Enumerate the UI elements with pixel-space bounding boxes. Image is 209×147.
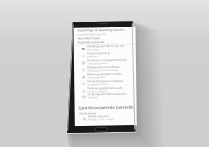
staticText: Hierdie toestel: [79, 111, 97, 114]
staticText: sinkroniseer: [87, 48, 100, 51]
staticText: Ondersteunde Office dokumen: [87, 92, 127, 96]
staticText: Programme wat jy: [87, 51, 111, 55]
staticText: Instellings wat bly oor jou toe: [87, 44, 125, 48]
staticText: Voorkeure vir toeganklikheid en: [87, 58, 128, 62]
button[interactable]: Wagwoorde en sertifikate: [74, 65, 136, 72]
staticText: gekies het: [87, 55, 98, 58]
button[interactable]: Microsoft Edge se instellings: [74, 79, 136, 86]
button[interactable]: Programme wat jy: [74, 51, 136, 58]
staticText: My Linked Tools: [78, 36, 101, 40]
staticText: Hierdie rekenaar: [88, 114, 110, 118]
button[interactable]: Instellings vir Roaming Service …: [0, 0, 209, 147]
button[interactable]: Instellings wat bly oor jou toe: [74, 44, 136, 52]
staticText: Instellings vir Roaming Service …: [77, 28, 129, 32]
button[interactable]: Blaaier geskiedenis en tabs: [74, 72, 136, 79]
button[interactable]: Ondersteunde Office dokumen: [74, 92, 136, 99]
button[interactable]: Voorkeure vir toeganklikheid en: [74, 58, 136, 65]
staticText: Blaaier geskiedenis en tabs: [87, 72, 122, 76]
staticText: Microsoft Edge se instellings: [87, 79, 123, 83]
staticText: Konto en sinkronisering: [78, 32, 107, 35]
staticText: Tema en agtergrond keuses: [87, 86, 123, 90]
staticText: word gesinkroniseer: [87, 83, 109, 86]
staticText: Windows 11 Pro - aanlyn: [88, 118, 115, 121]
staticText: Wagwoorde en sertifikate: [87, 65, 120, 69]
staticText: oor toestelle heen: [87, 76, 106, 79]
staticText: taal keuses gestoor: [87, 62, 107, 65]
staticText: Gesinkroniseerde toestelle: [78, 104, 134, 110]
staticText: Available in one list: [78, 40, 105, 44]
button[interactable]: Hierdie rekenaar: [75, 114, 137, 121]
staticText: veilig gestoor op die rekening: [87, 69, 118, 72]
staticText: voorkeure: [87, 96, 98, 99]
button[interactable]: Tema en agtergrond keuses: [74, 86, 136, 93]
staticText: oor al jou masjiene: [87, 90, 107, 93]
